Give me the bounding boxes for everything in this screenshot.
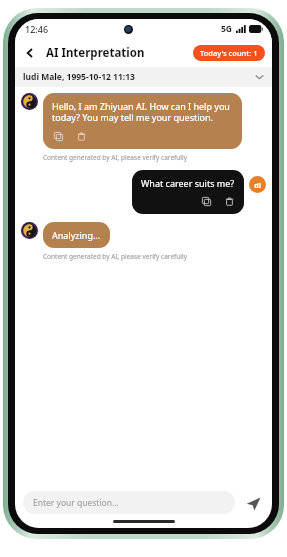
button[interactable]: Send — [242, 492, 264, 514]
staticText: Analyzing... — [52, 229, 101, 241]
staticText: AI Interpretation — [46, 45, 145, 61]
staticText: Hello, I am Zhiyuan AI. How can I help y… — [52, 100, 233, 124]
button[interactable]: User avatar — [249, 176, 266, 193]
staticText: Enter your question... — [33, 497, 119, 509]
button[interactable]: Today's count: 1 — [193, 45, 265, 61]
button[interactable]: Analyzing... — [43, 222, 110, 248]
staticText: Today's count: 1 — [200, 48, 258, 58]
button[interactable]: Copy — [200, 195, 212, 207]
other: AI avatar — [21, 222, 38, 239]
button[interactable]: ludi Male, 1995-10-12 11:13 — [15, 67, 272, 87]
button[interactable]: Back — [19, 42, 41, 64]
staticText: 5G — [221, 23, 233, 35]
button[interactable]: Delete — [223, 195, 235, 207]
button[interactable]: Enter your question... — [23, 491, 235, 514]
staticText: Content generated by AI, please verify c… — [43, 153, 187, 162]
button[interactable]: Copy — [52, 130, 64, 142]
staticText: What career suits me? — [141, 177, 235, 189]
button[interactable]: Delete — [75, 130, 87, 142]
staticText: di — [254, 180, 261, 190]
button[interactable]: Hello, I am Zhiyuan AI. How can I help y… — [43, 93, 242, 149]
staticText: 12:46 — [25, 23, 49, 35]
staticText: Content generated by AI, please verify c… — [43, 252, 187, 261]
other: AI avatar — [21, 93, 38, 110]
button[interactable]: What career suits me? — [132, 170, 244, 214]
staticText: ludi Male, 1995-10-12 11:13 — [23, 71, 135, 83]
